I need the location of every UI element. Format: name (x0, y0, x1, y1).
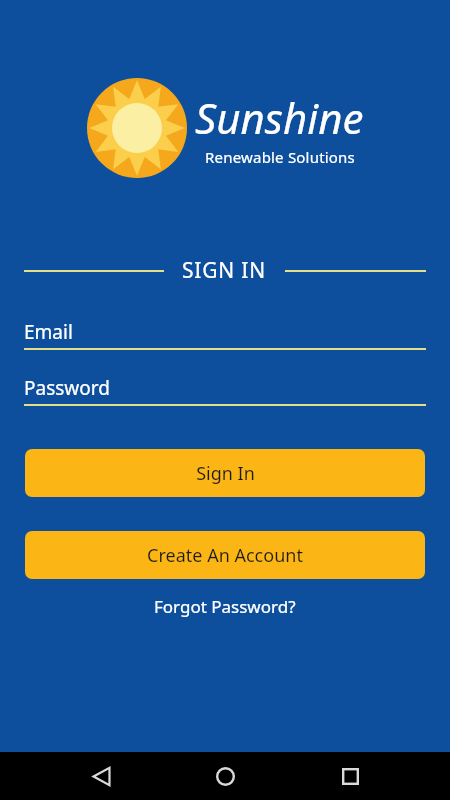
button[interactable]: Sign In (25, 449, 425, 497)
staticText: Create An Account (147, 543, 303, 568)
staticText: Renewable Solutions (205, 147, 355, 167)
staticText: Sunshine (195, 89, 364, 146)
staticText: Email (24, 319, 73, 345)
button[interactable]: Email (24, 315, 426, 350)
button[interactable]: Create An Account (25, 531, 425, 579)
button[interactable]: Home (201, 752, 249, 800)
button[interactable]: Back (77, 752, 125, 800)
button[interactable]: Recent apps (326, 752, 374, 800)
staticText: Sign In (196, 461, 255, 486)
staticText: Password (24, 375, 110, 401)
staticText: Forgot Password? (154, 595, 296, 618)
button[interactable]: Forgot Password? (144, 591, 306, 622)
button[interactable]: Password (24, 371, 426, 406)
staticText: SIGN IN (182, 256, 267, 285)
